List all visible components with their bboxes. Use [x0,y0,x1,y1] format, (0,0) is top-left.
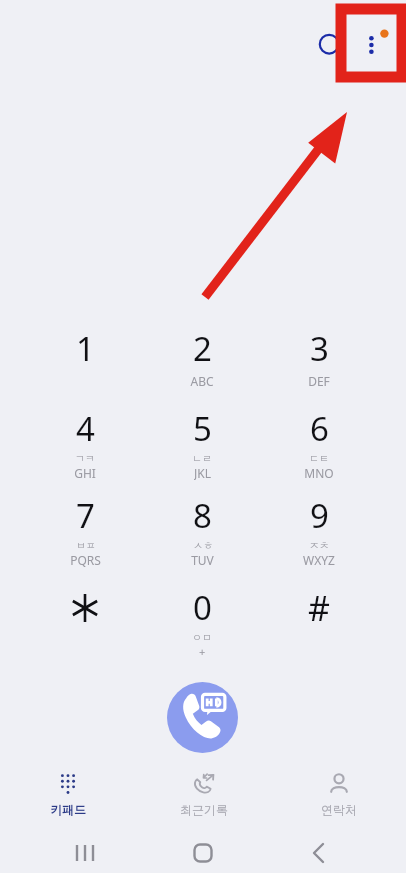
staticText: ㅇㅁ [192,631,212,644]
staticText: 5 [193,406,212,451]
staticText: WXYZ [303,552,335,567]
button[interactable]: 최근기록 [136,765,271,817]
staticText: ㄱㅋ [75,452,95,465]
staticText: PQRS [70,552,101,567]
button[interactable] [37,585,133,647]
button[interactable]: Search [310,25,350,65]
button[interactable]: More options [353,25,393,65]
button[interactable]: # [271,585,367,647]
staticText: 9 [310,493,329,538]
staticText: DEF [308,373,330,389]
staticText: 3 [310,326,329,371]
button[interactable]: 3 [271,326,367,400]
button[interactable]: 9 [271,493,367,567]
staticText: # [308,585,330,631]
staticText: ㄷㅌ [309,452,329,465]
staticText: 4 [76,406,95,451]
button[interactable]: 2 [154,326,250,400]
staticText: 연락처 [321,802,357,817]
staticText: MNO [304,465,334,480]
staticText: ㄴㄹ [192,452,212,465]
staticText: 8 [193,493,212,538]
button[interactable]: 6 [271,406,367,480]
button[interactable]: 8 [154,493,250,567]
staticText: + [199,644,206,655]
staticText: 1 [76,326,95,371]
button[interactable]: Call [167,682,238,753]
staticText: 키패드 [50,802,86,817]
staticText: 2 [193,326,212,371]
button[interactable]: Recent apps [65,833,105,873]
staticText: GHI [74,465,96,480]
button[interactable]: 5 [154,406,250,480]
button[interactable]: 1 [37,326,133,400]
button[interactable]: Back [297,833,337,873]
staticText: ㅈㅊ [309,539,329,552]
button[interactable]: 연락처 [271,765,406,817]
staticText: 7 [76,493,95,538]
staticText: ㅅㅎ [193,539,213,552]
staticText: 6 [310,406,329,451]
staticText: 최근기록 [180,802,228,817]
button[interactable]: Home [183,833,223,873]
button[interactable]: 키패드 [0,765,136,817]
staticText: TUV [191,552,214,567]
staticText: JKL [194,465,211,480]
button[interactable]: 7 [37,493,133,567]
staticText: ABC [190,373,214,389]
button[interactable]: 0 [154,585,250,655]
staticText: 0 [193,585,212,630]
button[interactable]: 4 [37,406,133,480]
staticText: ㅂㅍ [76,539,96,552]
